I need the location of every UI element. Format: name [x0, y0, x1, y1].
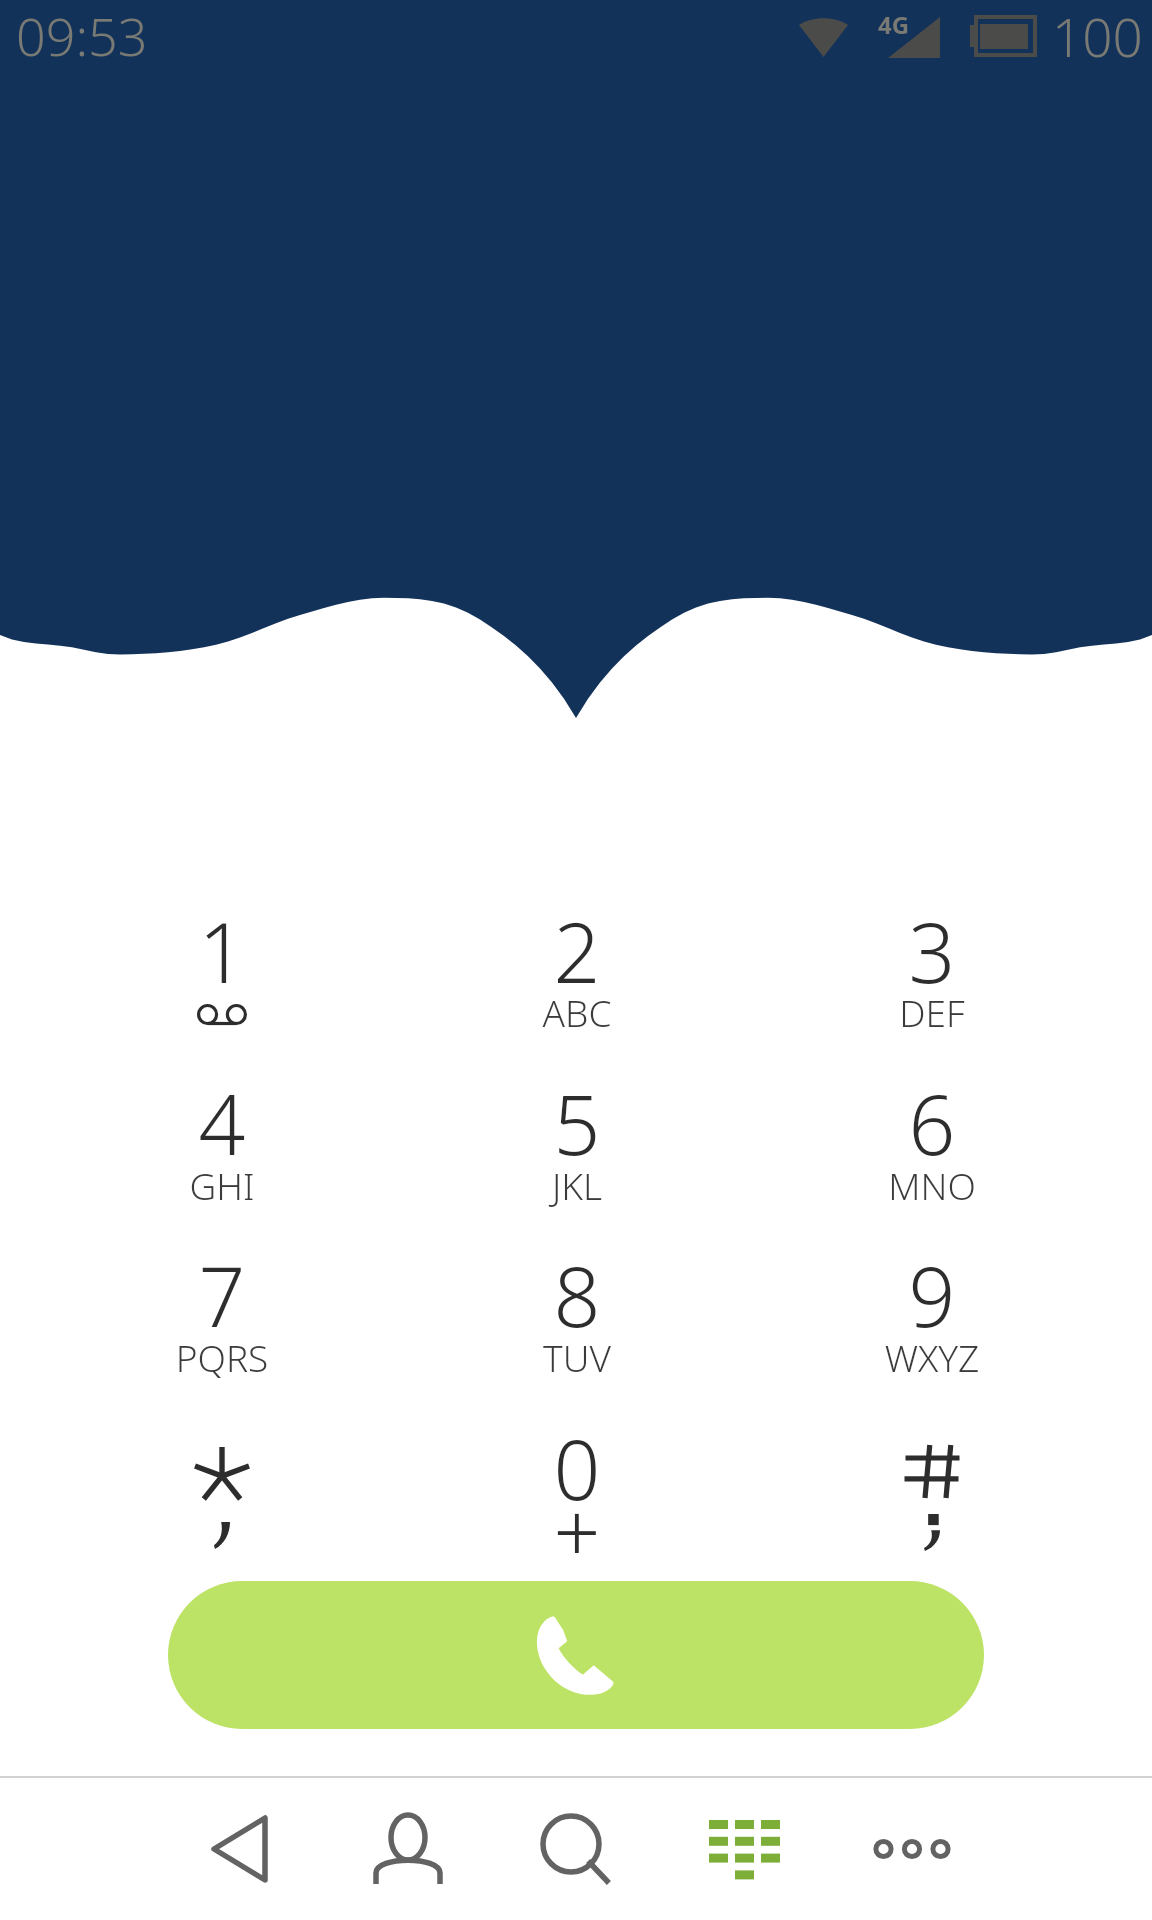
button[interactable]: Search [506, 1778, 646, 1920]
staticText: 9 [812, 1239, 1052, 1351]
button[interactable]: 1 [45, 882, 399, 1054]
button[interactable]: 4 [45, 1054, 399, 1226]
button[interactable]: 2 [400, 882, 754, 1054]
button[interactable]: Back [170, 1778, 310, 1920]
staticText: DEF [812, 987, 1052, 1037]
staticText: 2 [457, 895, 697, 1007]
staticText: TUV [457, 1332, 697, 1382]
button[interactable]: 6 [755, 1054, 1109, 1226]
staticText: 1 [102, 895, 342, 1007]
button[interactable]: More [842, 1778, 982, 1920]
staticText: 6 [812, 1067, 1052, 1179]
button[interactable]: Call [168, 1581, 984, 1729]
button[interactable]: Contacts [338, 1778, 478, 1920]
staticText: 5 [457, 1067, 697, 1179]
button[interactable] [45, 1405, 399, 1577]
staticText: 4G [878, 8, 910, 41]
staticText: 8 [457, 1239, 697, 1351]
button[interactable]: 8 [400, 1226, 754, 1398]
staticText: MNO [812, 1160, 1052, 1210]
staticText: ABC [457, 987, 697, 1037]
staticText: GHI [102, 1160, 342, 1210]
button[interactable] [755, 1403, 1109, 1575]
staticText: 09:53 [16, 0, 148, 71]
button[interactable]: 0 [400, 1399, 754, 1571]
button[interactable]: 3 [755, 882, 1109, 1054]
button[interactable]: 7 [45, 1226, 399, 1398]
staticText: + [457, 1475, 697, 1587]
staticText: 3 [812, 895, 1052, 1007]
staticText: PQRS [102, 1332, 342, 1382]
staticText: JKL [457, 1160, 697, 1210]
staticText: 7 [102, 1239, 342, 1351]
staticText: WXYZ [812, 1332, 1052, 1382]
button[interactable]: 9 [755, 1226, 1109, 1398]
button[interactable]: 5 [400, 1054, 754, 1226]
staticText: 100 [1052, 0, 1143, 72]
staticText: 4 [102, 1067, 342, 1179]
staticText: 0 [457, 1412, 697, 1524]
button[interactable]: Dialpad [674, 1778, 814, 1920]
